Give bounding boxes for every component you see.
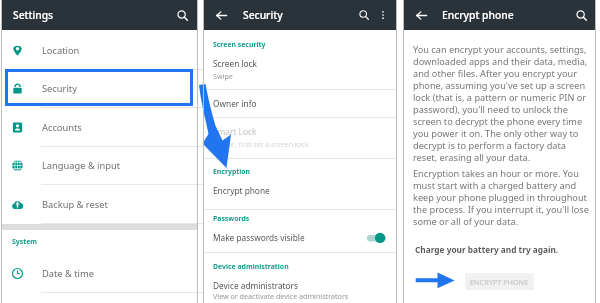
staticText: System xyxy=(12,237,38,246)
staticText: Screen security xyxy=(213,40,266,49)
staticText: Swipe xyxy=(213,71,233,81)
button[interactable]: Backup & reset xyxy=(2,185,197,224)
staticText: ENCRYPT PHONE xyxy=(470,277,529,287)
staticText: Encrypt phone xyxy=(442,8,514,22)
staticText: Date & time xyxy=(42,267,94,280)
button[interactable]: Owner info xyxy=(213,98,257,109)
button[interactable]: More options xyxy=(375,7,391,23)
button[interactable]: Security xyxy=(2,69,197,108)
staticText: Backup & reset xyxy=(42,198,108,211)
staticText: Owner info xyxy=(213,98,257,109)
staticText: Charge your battery and try again. xyxy=(415,244,559,255)
button[interactable]: Back xyxy=(411,5,431,25)
button[interactable]: Location xyxy=(2,31,197,70)
staticText: Location xyxy=(42,44,80,57)
staticText: Device administrators xyxy=(213,280,298,291)
button[interactable]: Search xyxy=(171,4,193,26)
button[interactable]: Language & input xyxy=(2,146,197,185)
button[interactable]: Date & time xyxy=(2,254,197,293)
staticText: Encrypt phone xyxy=(213,185,270,196)
button[interactable]: Make passwords visible toggle xyxy=(364,230,388,246)
button[interactable]: Screen lock xyxy=(213,58,258,69)
button[interactable]: Accounts xyxy=(2,108,197,147)
staticText: Make passwords visible xyxy=(213,232,305,243)
button[interactable]: Device administrators xyxy=(213,280,298,291)
staticText: Device administration xyxy=(213,262,289,271)
staticText: Encryption xyxy=(213,167,251,176)
staticText: Settings xyxy=(13,8,54,22)
button[interactable]: Search xyxy=(355,6,373,24)
button[interactable]: Make passwords visible xyxy=(213,232,305,243)
staticText: Language & input xyxy=(42,159,121,172)
button[interactable]: Back xyxy=(211,5,231,25)
staticText: Smart Lock xyxy=(213,126,257,137)
staticText: Passwords xyxy=(213,214,250,223)
staticText: You can encrypt your accounts, settings,… xyxy=(413,43,591,163)
staticText: Security xyxy=(243,8,283,22)
staticText: Encryption takes an hour or more. You mu… xyxy=(413,167,591,227)
button[interactable]: ENCRYPT PHONE xyxy=(465,273,534,290)
staticText: View or deactivate device administrators xyxy=(213,291,349,301)
button[interactable]: Search xyxy=(571,5,591,25)
staticText: To use, first set a screen lock xyxy=(213,139,309,149)
staticText: Accounts xyxy=(42,121,82,134)
staticText: Security xyxy=(42,82,77,95)
staticText: Screen lock xyxy=(213,58,258,69)
button[interactable]: Encrypt phone xyxy=(213,185,270,196)
